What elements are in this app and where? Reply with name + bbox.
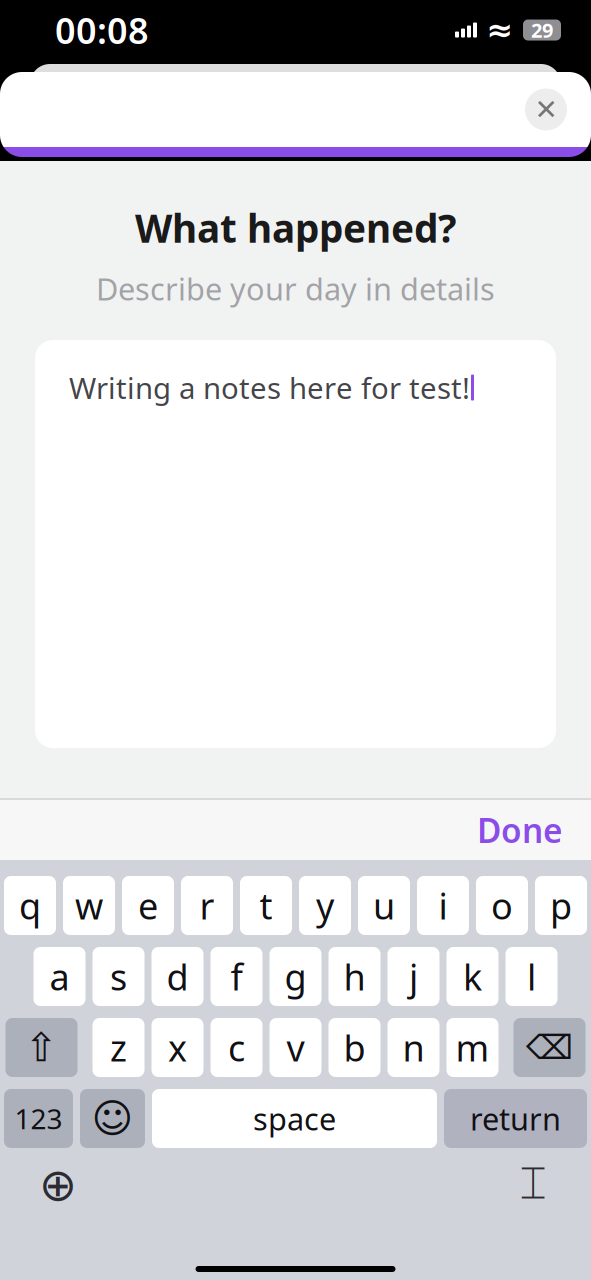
button[interactable]: l [505,947,557,1006]
button[interactable]: o [476,876,528,935]
button[interactable]: Next keyboard [35,1162,81,1208]
button[interactable]: Close [524,87,568,131]
button[interactable]: f [210,947,262,1006]
staticText: w [75,882,103,929]
staticText: j [409,953,418,1000]
button[interactable]: i [417,876,469,935]
staticText: ⌫ [526,1029,573,1066]
staticText: c [228,1024,245,1071]
button[interactable]: return [444,1089,587,1148]
staticText: q [19,882,41,929]
staticText: r [199,882,214,929]
button[interactable]: b [328,1018,380,1077]
button[interactable]: s [92,947,144,1006]
button[interactable]: c [210,1018,262,1077]
button[interactable]: Emoji [80,1089,145,1148]
staticText: y [316,882,334,929]
staticText: m [455,1024,489,1071]
staticText: l [527,953,536,1000]
button[interactable]: g [269,947,321,1006]
staticText: t [259,882,272,929]
staticText: space [253,1098,336,1139]
button[interactable]: v [269,1018,321,1077]
staticText: ⊕ [39,1159,77,1211]
staticText: ☺ [91,1096,133,1141]
staticText: ⌶ [519,1163,546,1207]
staticText: s [110,953,127,1000]
button[interactable]: j [387,947,439,1006]
button[interactable]: p [535,876,587,935]
staticText: n [402,1024,424,1071]
staticText: h [343,953,365,1000]
button[interactable]: a [33,947,85,1006]
staticText: What happened? [135,202,456,253]
button[interactable]: z [92,1018,144,1077]
staticText: k [463,953,482,1000]
staticText: Describe your day in details [96,268,495,309]
staticText: ≈ [486,12,513,48]
staticText: g [284,953,306,1000]
staticText: u [373,882,395,929]
button[interactable]: space [152,1089,437,1148]
button[interactable]: q [4,876,56,935]
button[interactable]: m [446,1018,498,1077]
staticText: x [168,1024,187,1071]
button[interactable]: h [328,947,380,1006]
staticText: return [470,1098,561,1139]
staticText: z [110,1024,127,1071]
button[interactable]: Shift [5,1018,77,1077]
button[interactable]: r [181,876,233,935]
staticText: 00:08 [55,6,149,54]
button[interactable]: Delete [513,1018,585,1077]
staticText: a [49,953,69,1000]
button[interactable]: t [240,876,292,935]
staticText: i [438,882,447,929]
button[interactable]: Done [459,800,581,860]
staticText: 123 [14,1100,62,1137]
staticText: b [343,1024,365,1071]
button[interactable]: k [446,947,498,1006]
button[interactable]: x [151,1018,203,1077]
staticText: v [286,1024,304,1071]
button[interactable]: d [151,947,203,1006]
staticText: 29 [531,17,553,43]
staticText: f [230,953,242,1000]
staticText: ⇧ [24,1025,58,1070]
button[interactable]: Dictation [510,1162,556,1208]
staticText: p [550,882,572,929]
staticText: e [138,882,158,929]
button[interactable]: e [122,876,174,935]
button[interactable]: n [387,1018,439,1077]
staticText: ✕ [534,94,557,125]
button[interactable]: u [358,876,410,935]
staticText: o [491,882,513,929]
button[interactable]: y [299,876,351,935]
button[interactable]: 123 [4,1089,73,1148]
button[interactable]: w [63,876,115,935]
staticText: d [166,953,188,1000]
staticText: Writing a notes here for test! [69,368,470,407]
staticText: Done [477,808,563,852]
